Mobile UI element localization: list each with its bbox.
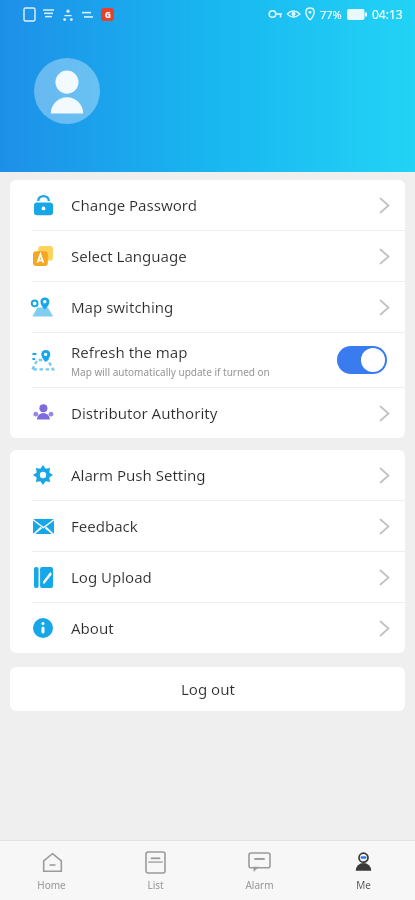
button[interactable]: Alarm Push Setting [10, 450, 405, 500]
staticText: Me [356, 878, 371, 892]
staticText: Change Password [71, 195, 197, 215]
staticText: Log out [181, 679, 235, 699]
button[interactable]: Home [0, 841, 103, 900]
button[interactable]: Log Upload [10, 552, 405, 602]
staticText: Map switching [71, 297, 174, 317]
staticText: G [105, 9, 111, 20]
staticText: 04:13 [372, 6, 403, 22]
button[interactable]: Alarm [207, 841, 311, 900]
staticText: 77% [320, 7, 342, 22]
staticText: Alarm [245, 878, 274, 892]
button[interactable]: Profile avatar [34, 58, 100, 124]
staticText: Distributor Authority [71, 403, 218, 423]
staticText: List [147, 878, 164, 892]
staticText: Home [37, 878, 66, 892]
button[interactable]: List [103, 841, 207, 900]
staticText: About [71, 618, 114, 638]
staticText: Map will automatically update if turned … [71, 365, 270, 379]
button[interactable]: Distributor Authority [10, 388, 405, 438]
button[interactable]: Select Language [10, 231, 405, 281]
button[interactable]: Feedback [10, 501, 405, 551]
button[interactable]: Map switching [10, 282, 405, 332]
staticText: Refresh the map [71, 342, 188, 362]
staticText: Alarm Push Setting [71, 465, 206, 485]
button[interactable]: Refresh the map [10, 333, 405, 387]
staticText: Log Upload [71, 567, 152, 587]
button[interactable]: Refresh the map toggle [337, 346, 387, 374]
button[interactable]: Log out [10, 667, 405, 711]
staticText: Select Language [71, 246, 187, 266]
button[interactable]: Change Password [10, 180, 405, 230]
staticText: Feedback [71, 516, 138, 536]
button[interactable]: About [10, 603, 405, 653]
button[interactable]: Me [311, 841, 415, 900]
